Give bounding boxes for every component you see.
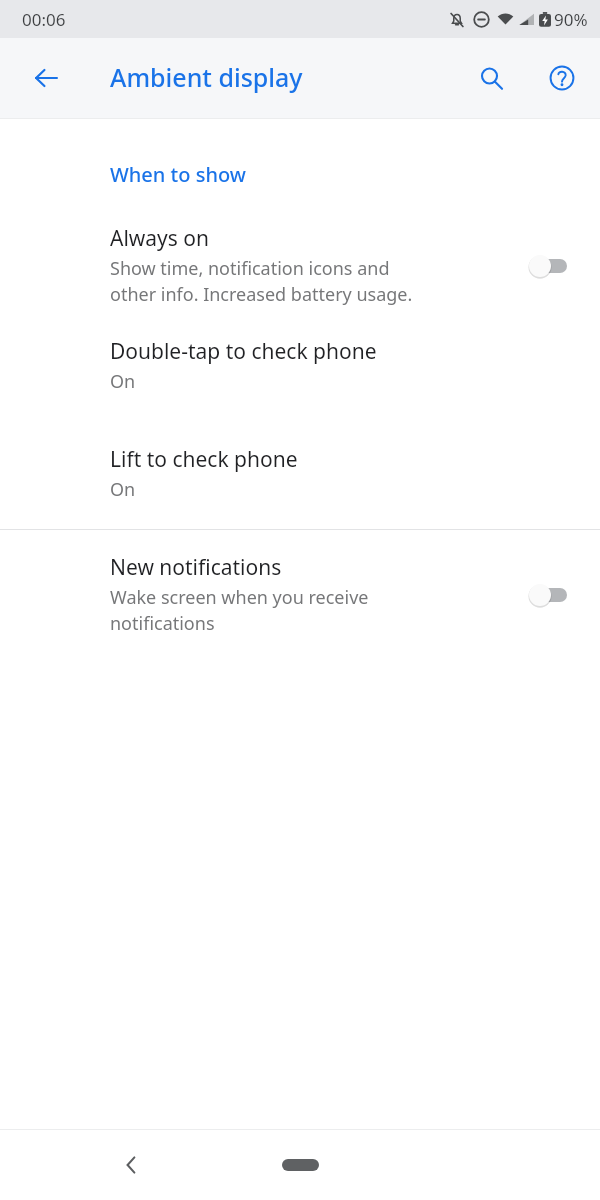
staticText: On	[110, 477, 136, 502]
staticText: Ambient display	[110, 60, 303, 94]
staticText: Lift to check phone	[110, 445, 298, 474]
staticText: 00:06	[22, 8, 66, 31]
staticText: Wake screen when you receive notificatio…	[110, 585, 369, 636]
button[interactable]: Home	[260, 1145, 340, 1185]
staticText: When to show	[110, 161, 246, 188]
button[interactable]: New notifications	[0, 551, 600, 638]
button[interactable]: Always on	[0, 222, 600, 309]
staticText: On	[110, 369, 136, 394]
staticText: Always on	[110, 224, 210, 253]
button[interactable]: Help	[538, 54, 586, 102]
staticText: Show time, notification icons and other …	[110, 256, 413, 307]
button[interactable]: Search	[467, 54, 515, 102]
button[interactable]: Lift to check phone	[0, 443, 600, 504]
button[interactable]: Toggle	[524, 246, 580, 286]
staticText: New notifications	[110, 553, 282, 582]
button[interactable]: Double-tap to check phone	[0, 335, 600, 396]
button[interactable]: Back	[108, 1141, 156, 1189]
staticText: 90%	[554, 8, 588, 31]
button[interactable]: Navigate up	[22, 54, 70, 102]
button[interactable]: Toggle	[524, 575, 580, 615]
staticText: Double-tap to check phone	[110, 337, 377, 366]
